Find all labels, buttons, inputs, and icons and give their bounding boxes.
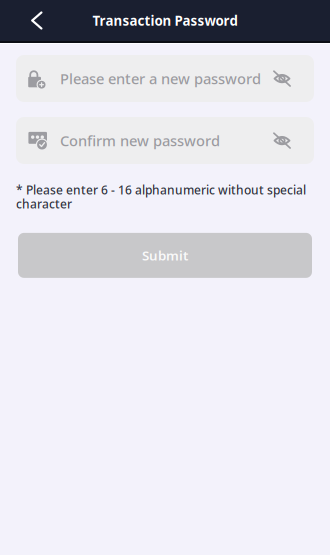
button[interactable]: Show new password xyxy=(267,61,297,95)
button[interactable]: Confirm new password xyxy=(28,117,267,164)
staticText: * Please enter 6 - 16 alphanumeric witho… xyxy=(16,182,306,212)
staticText: Confirm new password xyxy=(60,131,220,150)
button[interactable]: Show confirmed password xyxy=(267,123,297,157)
staticText: Submit xyxy=(142,246,188,264)
staticText: Transaction Password xyxy=(92,12,237,29)
button[interactable]: Back xyxy=(19,0,55,41)
button[interactable]: Please enter a new password xyxy=(28,55,267,102)
staticText: Please enter a new password xyxy=(60,69,261,88)
button[interactable]: Submit xyxy=(18,233,312,278)
